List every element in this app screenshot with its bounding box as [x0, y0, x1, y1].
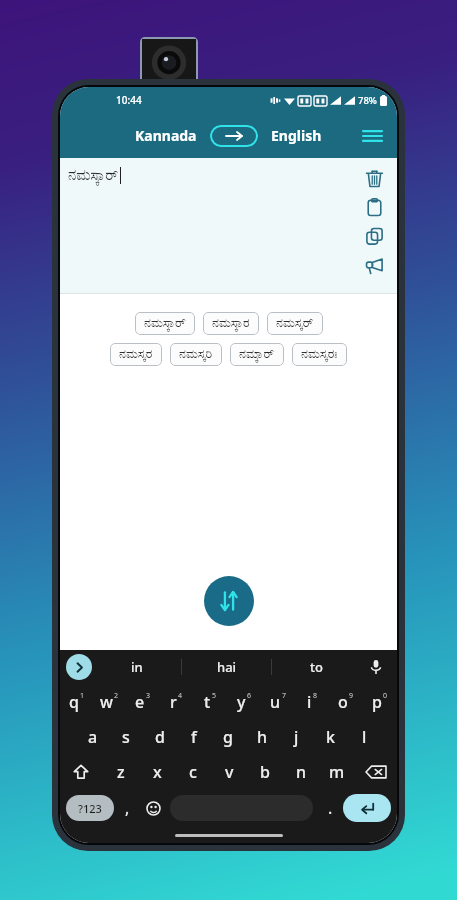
button[interactable]: j [279, 719, 313, 754]
staticText: b [260, 761, 270, 783]
button[interactable]: English [265, 122, 328, 149]
button[interactable]: , [114, 789, 140, 827]
staticText: 10:44 [116, 93, 142, 107]
staticText: p [372, 691, 382, 713]
button[interactable]: ನಮಸ್ಕಾರ [203, 312, 259, 335]
staticText: s [122, 726, 130, 748]
button[interactable]: in [92, 650, 181, 684]
staticText: l [362, 726, 367, 748]
button[interactable]: g [211, 719, 245, 754]
button[interactable]: to [272, 650, 361, 684]
button[interactable]: Space [170, 795, 313, 821]
button[interactable]: Clear text [354, 164, 394, 193]
button[interactable]: z [102, 754, 139, 789]
staticText: 2 [114, 691, 119, 701]
button[interactable]: Voice input [361, 650, 391, 684]
staticText: k [326, 726, 335, 748]
button[interactable]: ?123 [66, 795, 114, 821]
button[interactable]: Swap languages [210, 125, 258, 147]
button[interactable]: Speak [354, 251, 394, 280]
staticText: m [329, 761, 345, 783]
staticText: f [191, 726, 197, 748]
staticText: 4 [178, 691, 183, 701]
button[interactable]: c [175, 754, 211, 789]
button[interactable]: y [227, 684, 261, 719]
staticText: . [328, 797, 333, 819]
staticText: 1 [80, 691, 85, 701]
staticText: , [125, 797, 130, 819]
button[interactable]: Kannada [129, 122, 203, 149]
staticText: ನಮಸ್ಕಾರ [212, 317, 250, 330]
button[interactable]: s [109, 719, 143, 754]
button[interactable]: ನಮಸ್ಕರಃ [292, 343, 347, 366]
button[interactable]: w [93, 684, 126, 719]
staticText: a [88, 726, 98, 748]
staticText: c [189, 761, 197, 783]
button[interactable]: Backspace [355, 754, 397, 789]
staticText: 7 [282, 691, 287, 701]
button[interactable]: t [193, 684, 227, 719]
button[interactable]: k [313, 719, 347, 754]
staticText: h [257, 726, 268, 748]
button[interactable]: i [295, 684, 329, 719]
button[interactable]: q [60, 684, 93, 719]
staticText: j [294, 726, 299, 748]
staticText: g [223, 726, 233, 748]
button[interactable]: m [319, 754, 355, 789]
staticText: u [270, 691, 281, 713]
staticText: 78% [358, 94, 377, 107]
button[interactable]: Translate [204, 576, 254, 626]
staticText: e [135, 691, 145, 713]
button[interactable]: r [159, 684, 193, 719]
button[interactable]: b [247, 754, 283, 789]
staticText: q [69, 691, 79, 713]
button[interactable]: More suggestions [66, 654, 92, 680]
staticText: in [131, 658, 143, 676]
button[interactable]: l [347, 719, 381, 754]
staticText: Kannada [135, 126, 197, 145]
button[interactable]: Paste [354, 193, 394, 222]
button[interactable]: hai [182, 650, 271, 684]
staticText: ನಮ್ಕಾರ್ [239, 348, 275, 361]
button[interactable]: ನಮ್ಕಾರ್ [230, 343, 284, 366]
staticText: English [271, 126, 322, 145]
button[interactable]: Copy [354, 222, 394, 251]
staticText: z [117, 761, 125, 783]
staticText: 6 [247, 691, 252, 701]
staticText: to [310, 658, 323, 676]
button[interactable]: a [76, 719, 109, 754]
button[interactable]: ನಮಸ್ಕಾರ್ [135, 312, 195, 335]
staticText: o [338, 691, 348, 713]
button[interactable]: Enter [343, 794, 391, 822]
button[interactable]: ನಮಸ್ಕರಿ [170, 343, 222, 366]
button[interactable]: . [317, 789, 343, 827]
button[interactable]: Shift [60, 754, 102, 789]
button[interactable]: n [283, 754, 319, 789]
staticText: i [307, 691, 312, 713]
button[interactable]: Emoji [140, 789, 166, 827]
staticText: y [237, 691, 246, 713]
button[interactable]: x [139, 754, 175, 789]
staticText: ?123 [78, 801, 102, 816]
staticText: r [170, 691, 177, 713]
button[interactable]: Menu [359, 123, 385, 149]
staticText: 0 [383, 691, 388, 701]
button[interactable]: o [329, 684, 363, 719]
staticText: ನಮಸ್ಕಾರ್ [68, 168, 119, 183]
staticText: n [296, 761, 307, 783]
button[interactable]: v [211, 754, 247, 789]
staticText: ನಮಸ್ಕರಃ [301, 348, 338, 361]
button[interactable]: u [261, 684, 295, 719]
button[interactable]: h [245, 719, 279, 754]
staticText: 9 [349, 691, 354, 701]
staticText: ನಮಸ್ಕರ [119, 348, 153, 361]
button[interactable]: p [363, 684, 397, 719]
staticText: ನಮಸ್ಕರಿ [179, 348, 213, 361]
button[interactable]: ನಮಸ್ಕರ [110, 343, 162, 366]
button[interactable]: d [143, 719, 177, 754]
button[interactable]: e [126, 684, 159, 719]
button[interactable]: f [177, 719, 211, 754]
staticText: 3 [146, 691, 151, 701]
staticText: ನಮಸ್ಕರ್ [276, 317, 314, 330]
button[interactable]: ನಮಸ್ಕರ್ [267, 312, 323, 335]
